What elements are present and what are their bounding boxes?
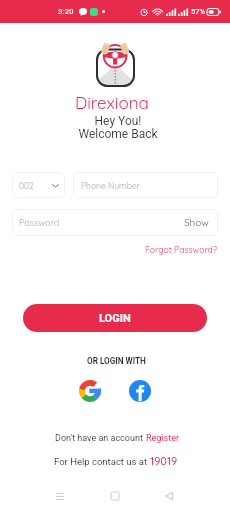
button[interactable]: Register <box>146 433 179 444</box>
button[interactable]: Back <box>157 484 181 508</box>
staticText: Don't have an account <box>55 433 146 444</box>
button[interactable]: 19019 <box>150 454 178 468</box>
staticText: Direxiona <box>75 92 149 113</box>
staticText: For Help contact us at <box>54 456 150 467</box>
staticText: 002 <box>19 180 34 191</box>
button[interactable]: Forgot Password? <box>145 244 218 255</box>
staticText: LOGIN <box>99 312 131 325</box>
button[interactable]: Home <box>103 484 127 508</box>
staticText: 57% <box>191 7 205 16</box>
button[interactable]: 002 <box>12 172 65 198</box>
staticText: Password <box>19 217 60 228</box>
button[interactable]: Recent apps <box>48 484 72 508</box>
button[interactable]: Password <box>12 209 218 236</box>
button[interactable]: Sign in with Facebook <box>129 380 151 402</box>
staticText: Phone Number <box>81 180 141 191</box>
staticText: Hey You! Welcome Back <box>78 114 158 141</box>
staticText: OR LOGIN WITH <box>87 356 146 366</box>
staticText: Show <box>184 216 209 229</box>
staticText: 3:20 <box>58 7 74 16</box>
button[interactable]: LOGIN <box>23 304 207 332</box>
button[interactable]: Phone Number <box>73 172 218 198</box>
button[interactable]: Sign in with Google <box>79 380 101 402</box>
